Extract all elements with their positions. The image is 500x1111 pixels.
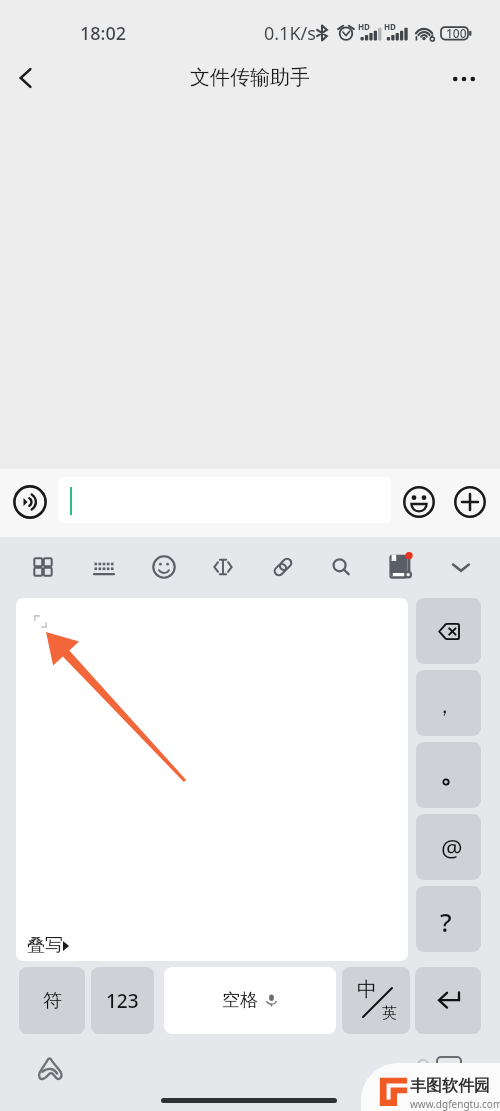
staticText: ， (434, 693, 455, 719)
button[interactable]: Collapse keyboard (433, 539, 488, 594)
button[interactable]: Input method settings (28, 1050, 72, 1086)
staticText: 叠写 (27, 934, 63, 957)
button[interactable]: 空格 (164, 967, 336, 1034)
button[interactable]: Back (0, 52, 52, 104)
button[interactable]: Handwriting area (16, 598, 408, 961)
button[interactable]: 123 (91, 967, 154, 1034)
button[interactable]: Emoji (136, 539, 191, 594)
button[interactable]: Notes (373, 539, 428, 594)
staticText: 空格 (222, 989, 258, 1012)
button[interactable]: Voice input (10, 482, 50, 522)
button[interactable]: Enter (415, 967, 481, 1034)
button[interactable]: ， (416, 670, 481, 736)
button[interactable]: Search (313, 539, 368, 594)
staticText: HD (384, 21, 396, 32)
button[interactable]: More options (438, 52, 490, 104)
button[interactable]: Keyboard (76, 539, 131, 594)
staticText: 123 (106, 988, 139, 1014)
staticText: @ (441, 831, 463, 864)
button[interactable]: Backspace (416, 598, 481, 664)
button[interactable]: ? (416, 886, 481, 952)
staticText: www.dgfengtu.com (410, 1097, 500, 1111)
button[interactable] (58, 477, 391, 523)
button[interactable]: Cursor tools (195, 539, 250, 594)
staticText: 18:02 (80, 21, 127, 46)
button[interactable]: More functions (450, 482, 490, 522)
button[interactable]: Clipboard (255, 539, 310, 594)
button[interactable]: Emoji (399, 482, 439, 522)
staticText: 100 (446, 25, 467, 41)
staticText: 中 (357, 977, 377, 1002)
button[interactable] (416, 742, 481, 808)
button[interactable]: 符 (19, 967, 85, 1034)
staticText: 符 (43, 989, 62, 1013)
button[interactable]: Panels (15, 539, 70, 594)
staticText: 0.1K/s (264, 21, 316, 46)
staticText: ? (440, 904, 452, 939)
button[interactable]: @ (416, 814, 481, 880)
staticText: HD (358, 21, 370, 32)
button[interactable]: Switch Chinese English (342, 967, 410, 1034)
staticText: 文件传输助手 (190, 65, 310, 90)
staticText: 英 (382, 1004, 397, 1023)
staticText: 丰图软件园 (410, 1076, 490, 1096)
